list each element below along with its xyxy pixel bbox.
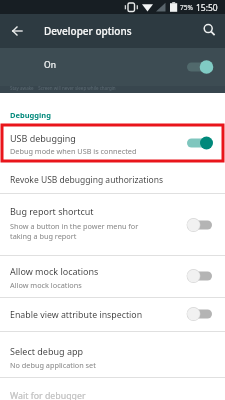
staticText: Allow mock locations (10, 280, 82, 290)
staticText: Wait for debugger (10, 390, 86, 400)
staticText: Enable view attribute inspection (10, 309, 143, 321)
staticText: Debug mode when USB is connected (10, 146, 137, 156)
staticText: Allow mock locations (10, 265, 99, 277)
staticText: Select debug app (10, 345, 84, 357)
staticText: Show a button in the power menu for (10, 221, 139, 231)
button[interactable] (6, 20, 28, 42)
staticText: On (44, 59, 56, 71)
button[interactable]: On (0, 48, 225, 86)
staticText: Revoke USB debugging authorizations (10, 174, 164, 186)
button[interactable]: Bug report shortcut (0, 194, 225, 255)
button[interactable]: Wait for debugger (0, 378, 225, 400)
staticText: No debug application set (10, 360, 96, 370)
staticText: Debugging (10, 110, 51, 120)
button[interactable]: Enable view attribute inspection (0, 298, 225, 331)
button[interactable]: Allow mock locations (0, 256, 225, 297)
staticText: Bug report shortcut (10, 205, 94, 217)
staticText: USB debugging (10, 132, 76, 144)
staticText: Stay awake Screen will never sleep while… (10, 85, 116, 91)
staticText: taking a bug report (10, 231, 77, 241)
button[interactable]: Select debug app (0, 332, 225, 377)
button[interactable]: Revoke USB debugging authorizations (0, 162, 225, 193)
staticText: Developer options (44, 24, 132, 38)
staticText: 75% (180, 3, 193, 12)
button[interactable]: USB debugging (0, 126, 225, 161)
button[interactable] (198, 19, 221, 42)
staticText: 15:50 (196, 2, 218, 14)
